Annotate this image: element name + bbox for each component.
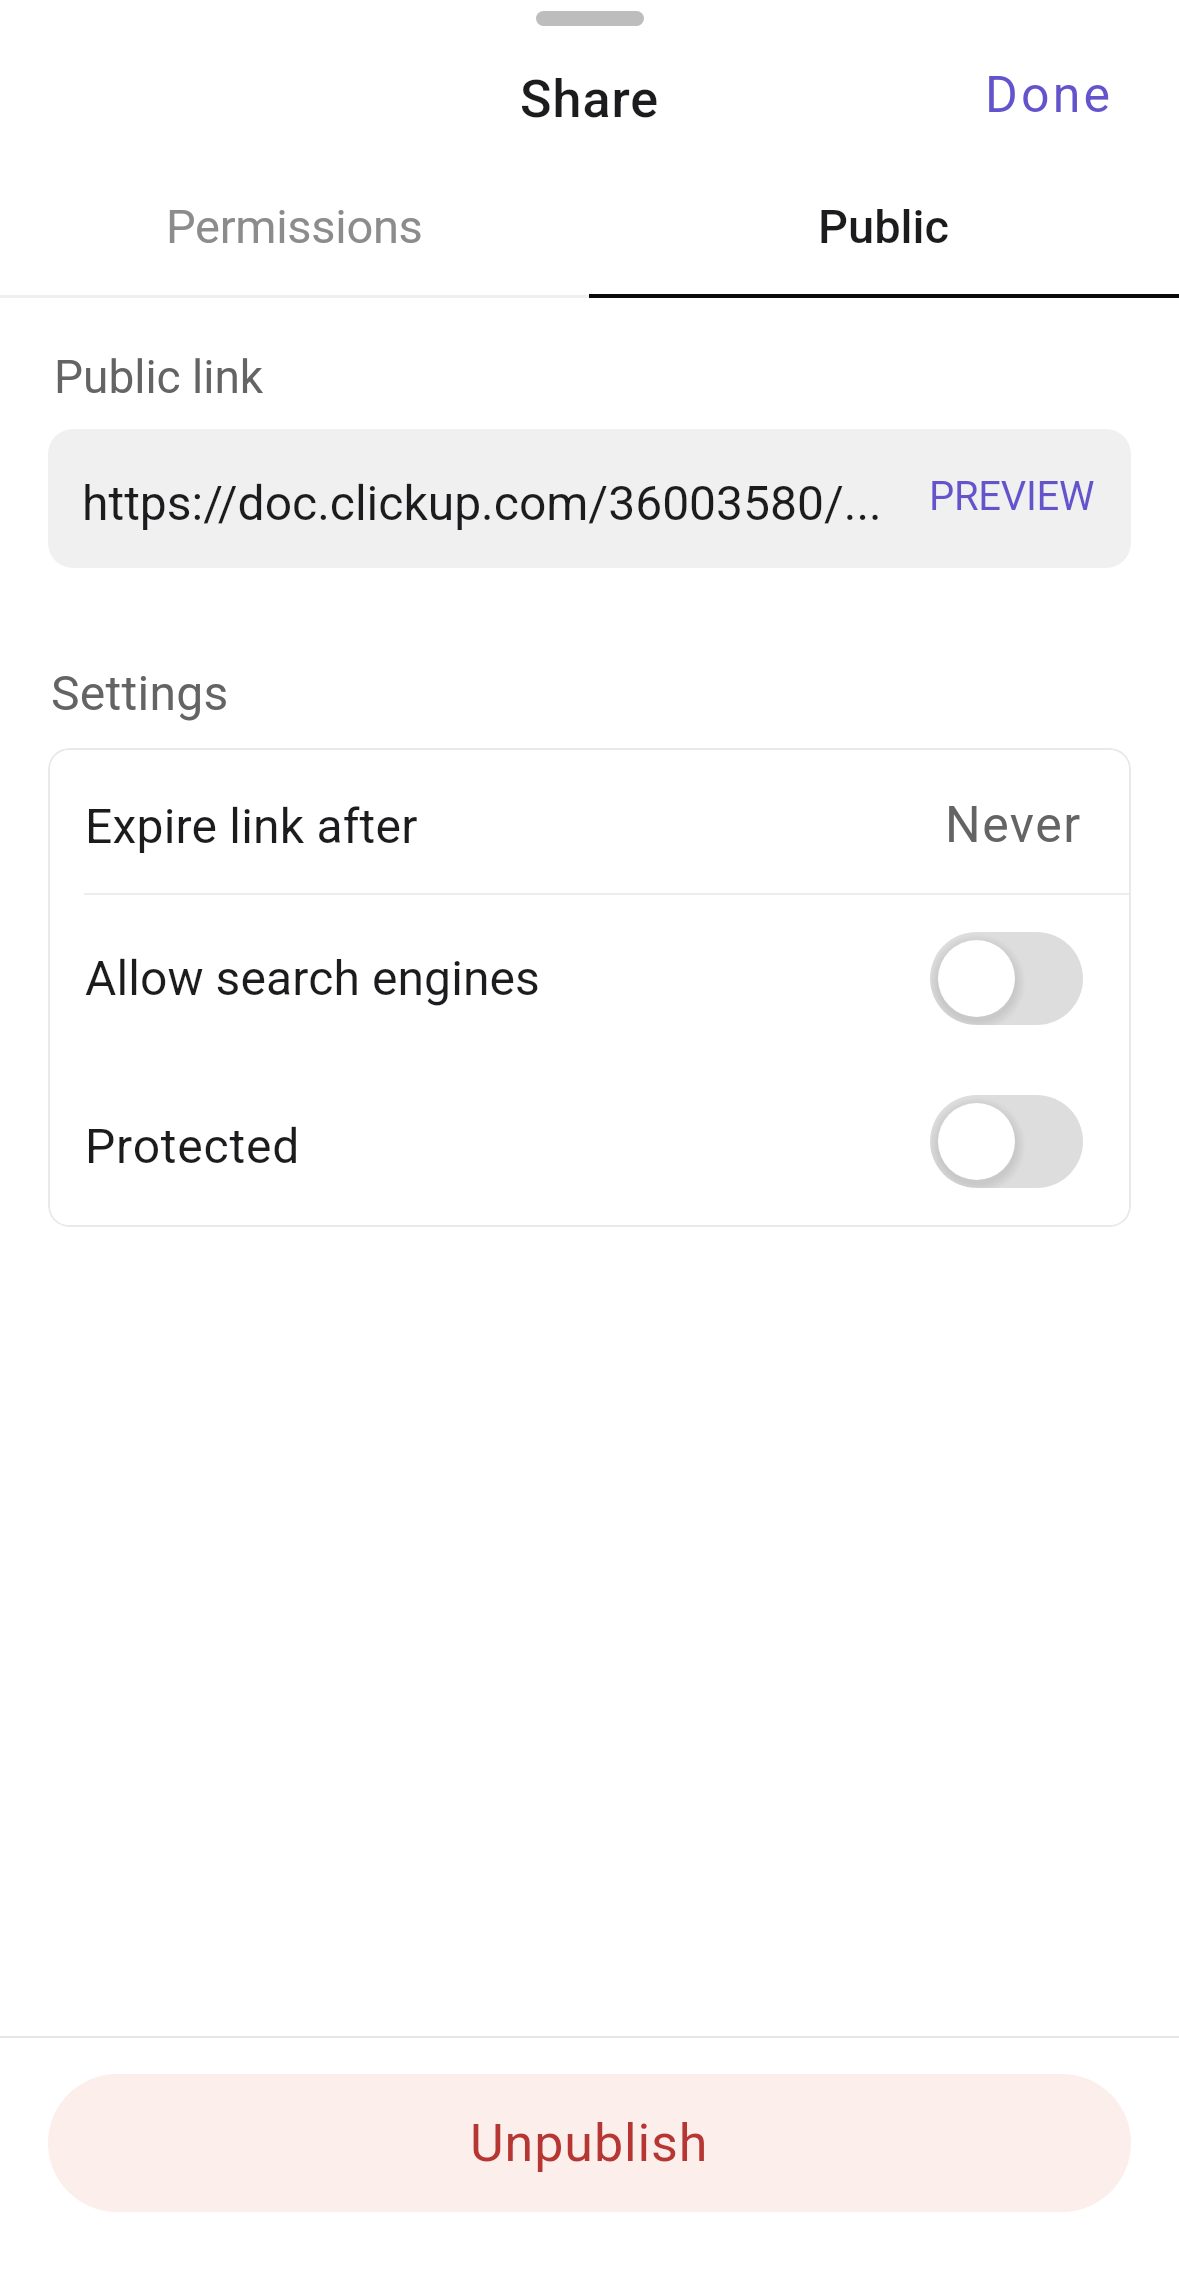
button[interactable]: Expire link after bbox=[48, 748, 1131, 893]
button[interactable]: https://doc.clickup.com/36003580/... bbox=[48, 429, 1131, 568]
other: Allow search engines bbox=[930, 932, 1083, 1025]
staticText: Protected bbox=[85, 1118, 301, 1174]
button[interactable]: PREVIEW bbox=[929, 475, 1131, 522]
button[interactable]: Allow search engines bbox=[48, 895, 1131, 1061]
staticText: Never bbox=[945, 796, 1082, 855]
button[interactable]: Protected bbox=[48, 1061, 1131, 1227]
staticText: https://doc.clickup.com/36003580/... bbox=[82, 475, 929, 531]
staticText: Unpublish bbox=[470, 2113, 709, 2174]
button[interactable]: Public bbox=[589, 160, 1179, 298]
staticText: Public bbox=[818, 199, 950, 254]
staticText: Expire link after bbox=[85, 798, 418, 854]
staticText: PREVIEW bbox=[929, 473, 1095, 520]
staticText: Settings bbox=[51, 665, 229, 721]
button[interactable]: Done bbox=[971, 54, 1128, 137]
staticText: Allow search engines bbox=[85, 950, 540, 1006]
staticText: Public link bbox=[54, 350, 264, 404]
staticText: Share bbox=[520, 69, 660, 130]
staticText: Done bbox=[985, 66, 1114, 125]
button[interactable]: Permissions bbox=[0, 160, 589, 298]
staticText: Permissions bbox=[166, 199, 423, 254]
other: Protected bbox=[930, 1095, 1083, 1188]
button[interactable]: Unpublish bbox=[48, 2074, 1131, 2212]
